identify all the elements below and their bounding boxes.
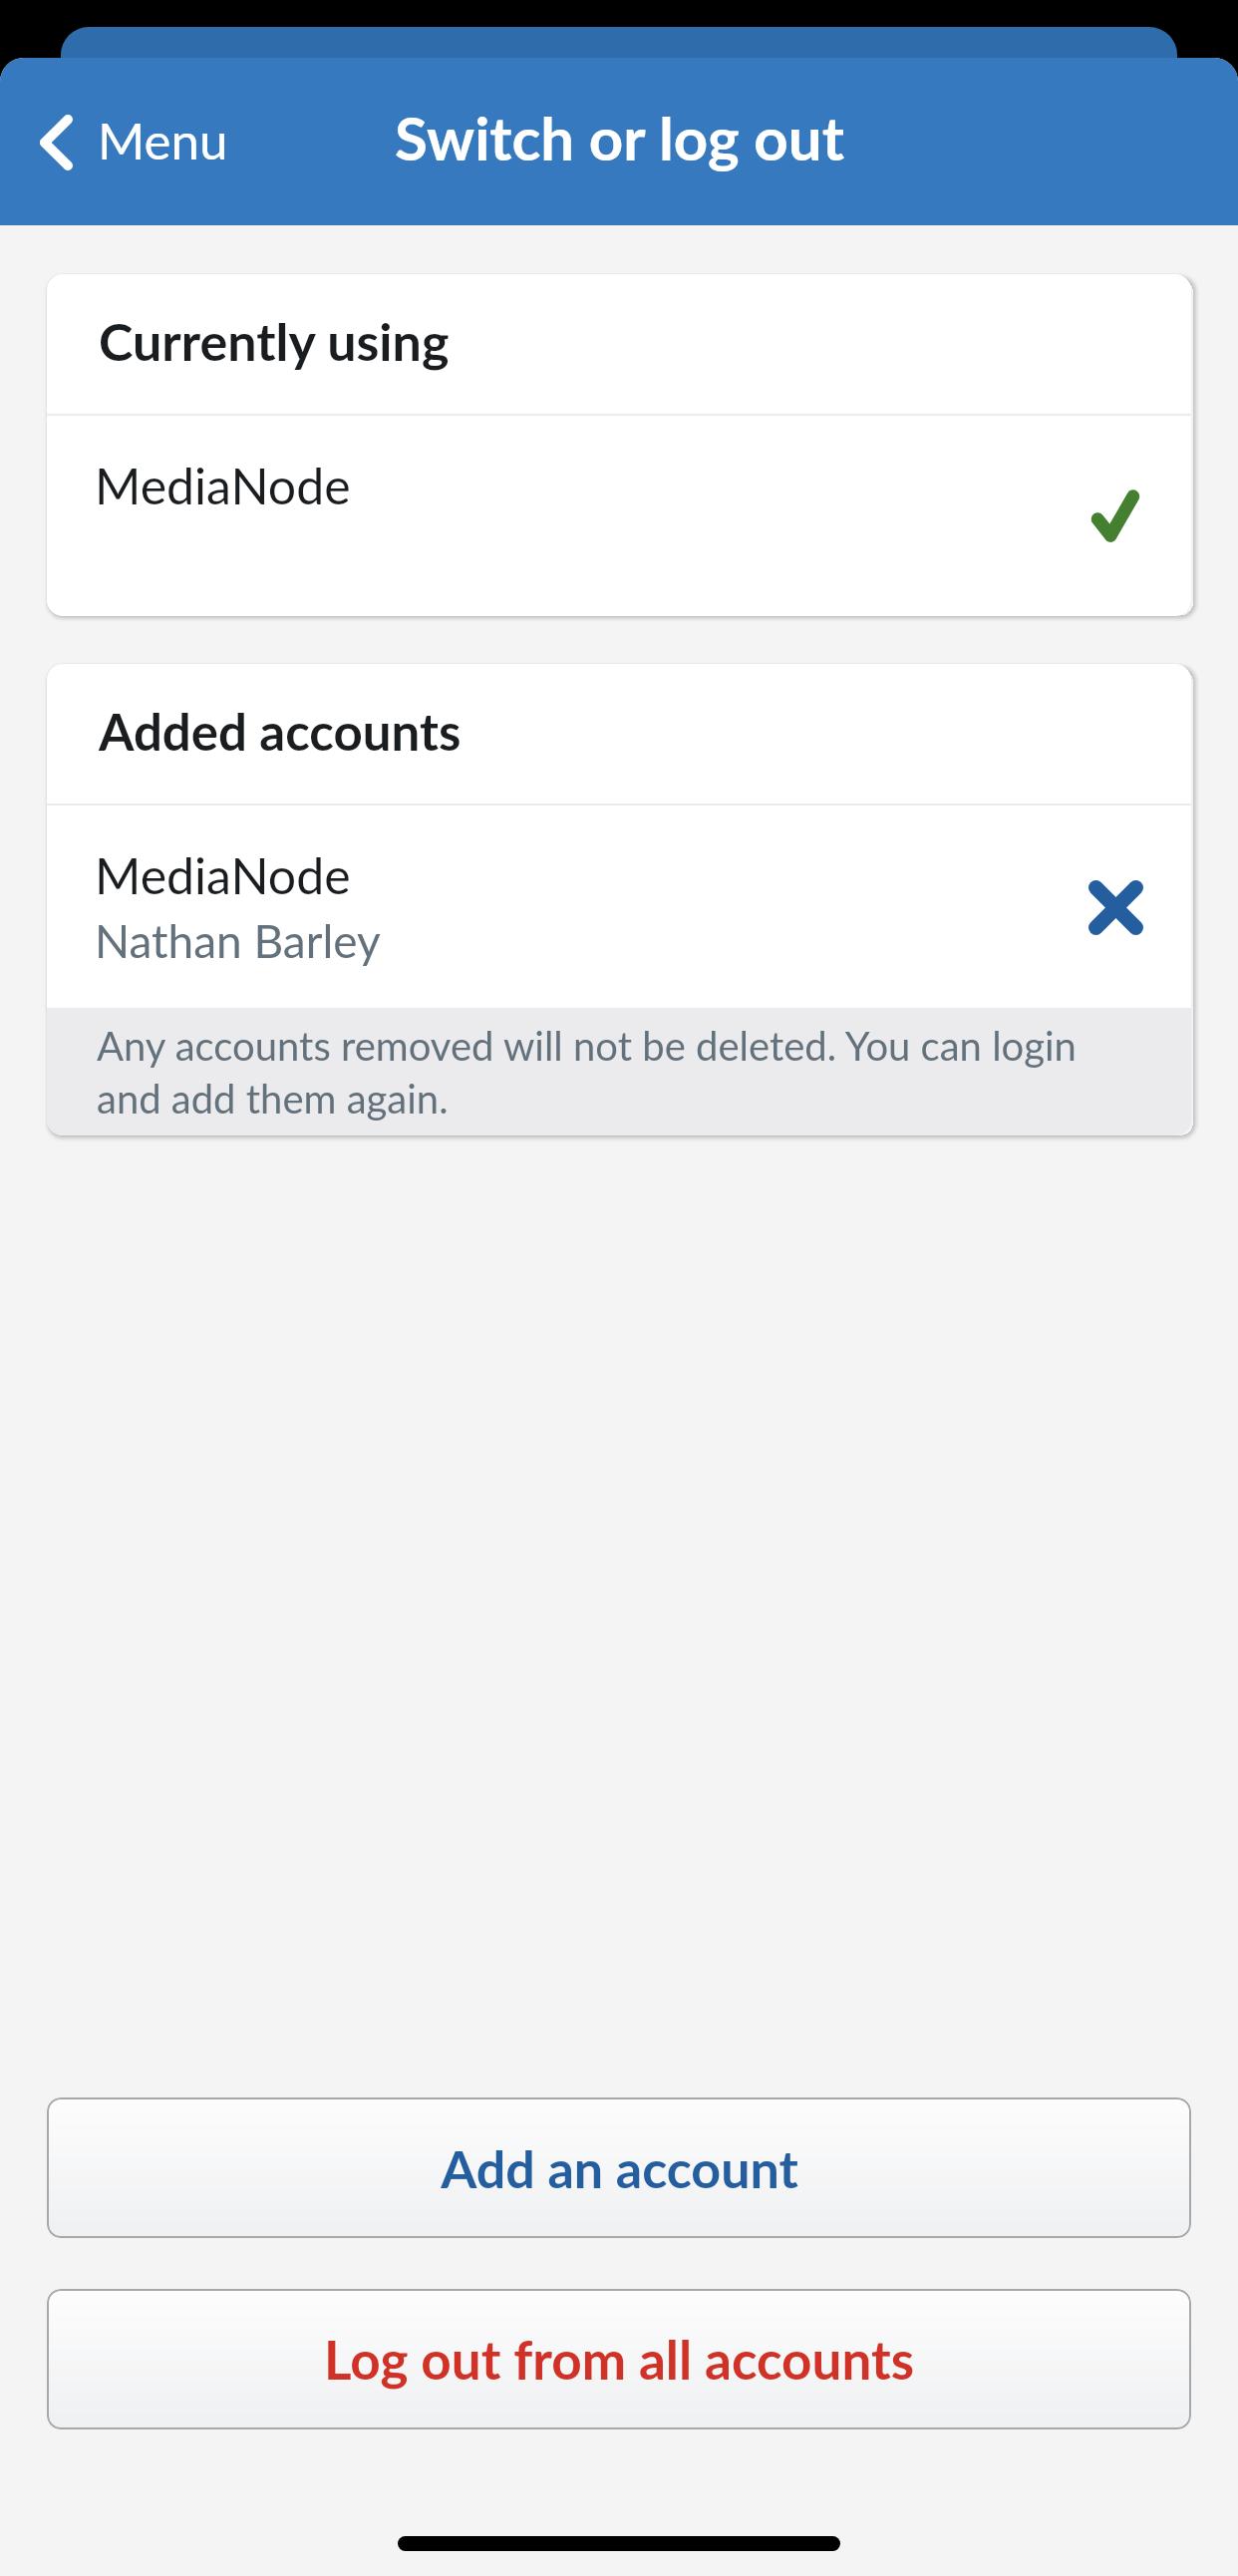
button[interactable]: Log out from all accounts — [47, 2289, 1191, 2429]
staticText: Menu — [98, 110, 228, 170]
button[interactable]: MediaNode — [47, 805, 1191, 1008]
staticText: Nathan Barley — [95, 913, 381, 968]
button[interactable]: MediaNode — [47, 416, 1191, 616]
staticText: Add an account — [441, 2137, 798, 2199]
staticText: MediaNode — [95, 456, 351, 515]
staticText: Added accounts — [99, 701, 462, 762]
staticText: Log out from all accounts — [324, 2328, 914, 2392]
staticText: Switch or log out — [395, 102, 844, 173]
staticText: Any accounts removed will not be deleted… — [97, 1022, 1113, 1122]
staticText: Currently using — [99, 310, 450, 372]
button[interactable]: Remove account — [1079, 870, 1152, 944]
button[interactable]: Add an account — [47, 2097, 1191, 2238]
staticText: MediaNode — [95, 845, 351, 905]
button[interactable]: Back to Menu — [24, 98, 244, 186]
